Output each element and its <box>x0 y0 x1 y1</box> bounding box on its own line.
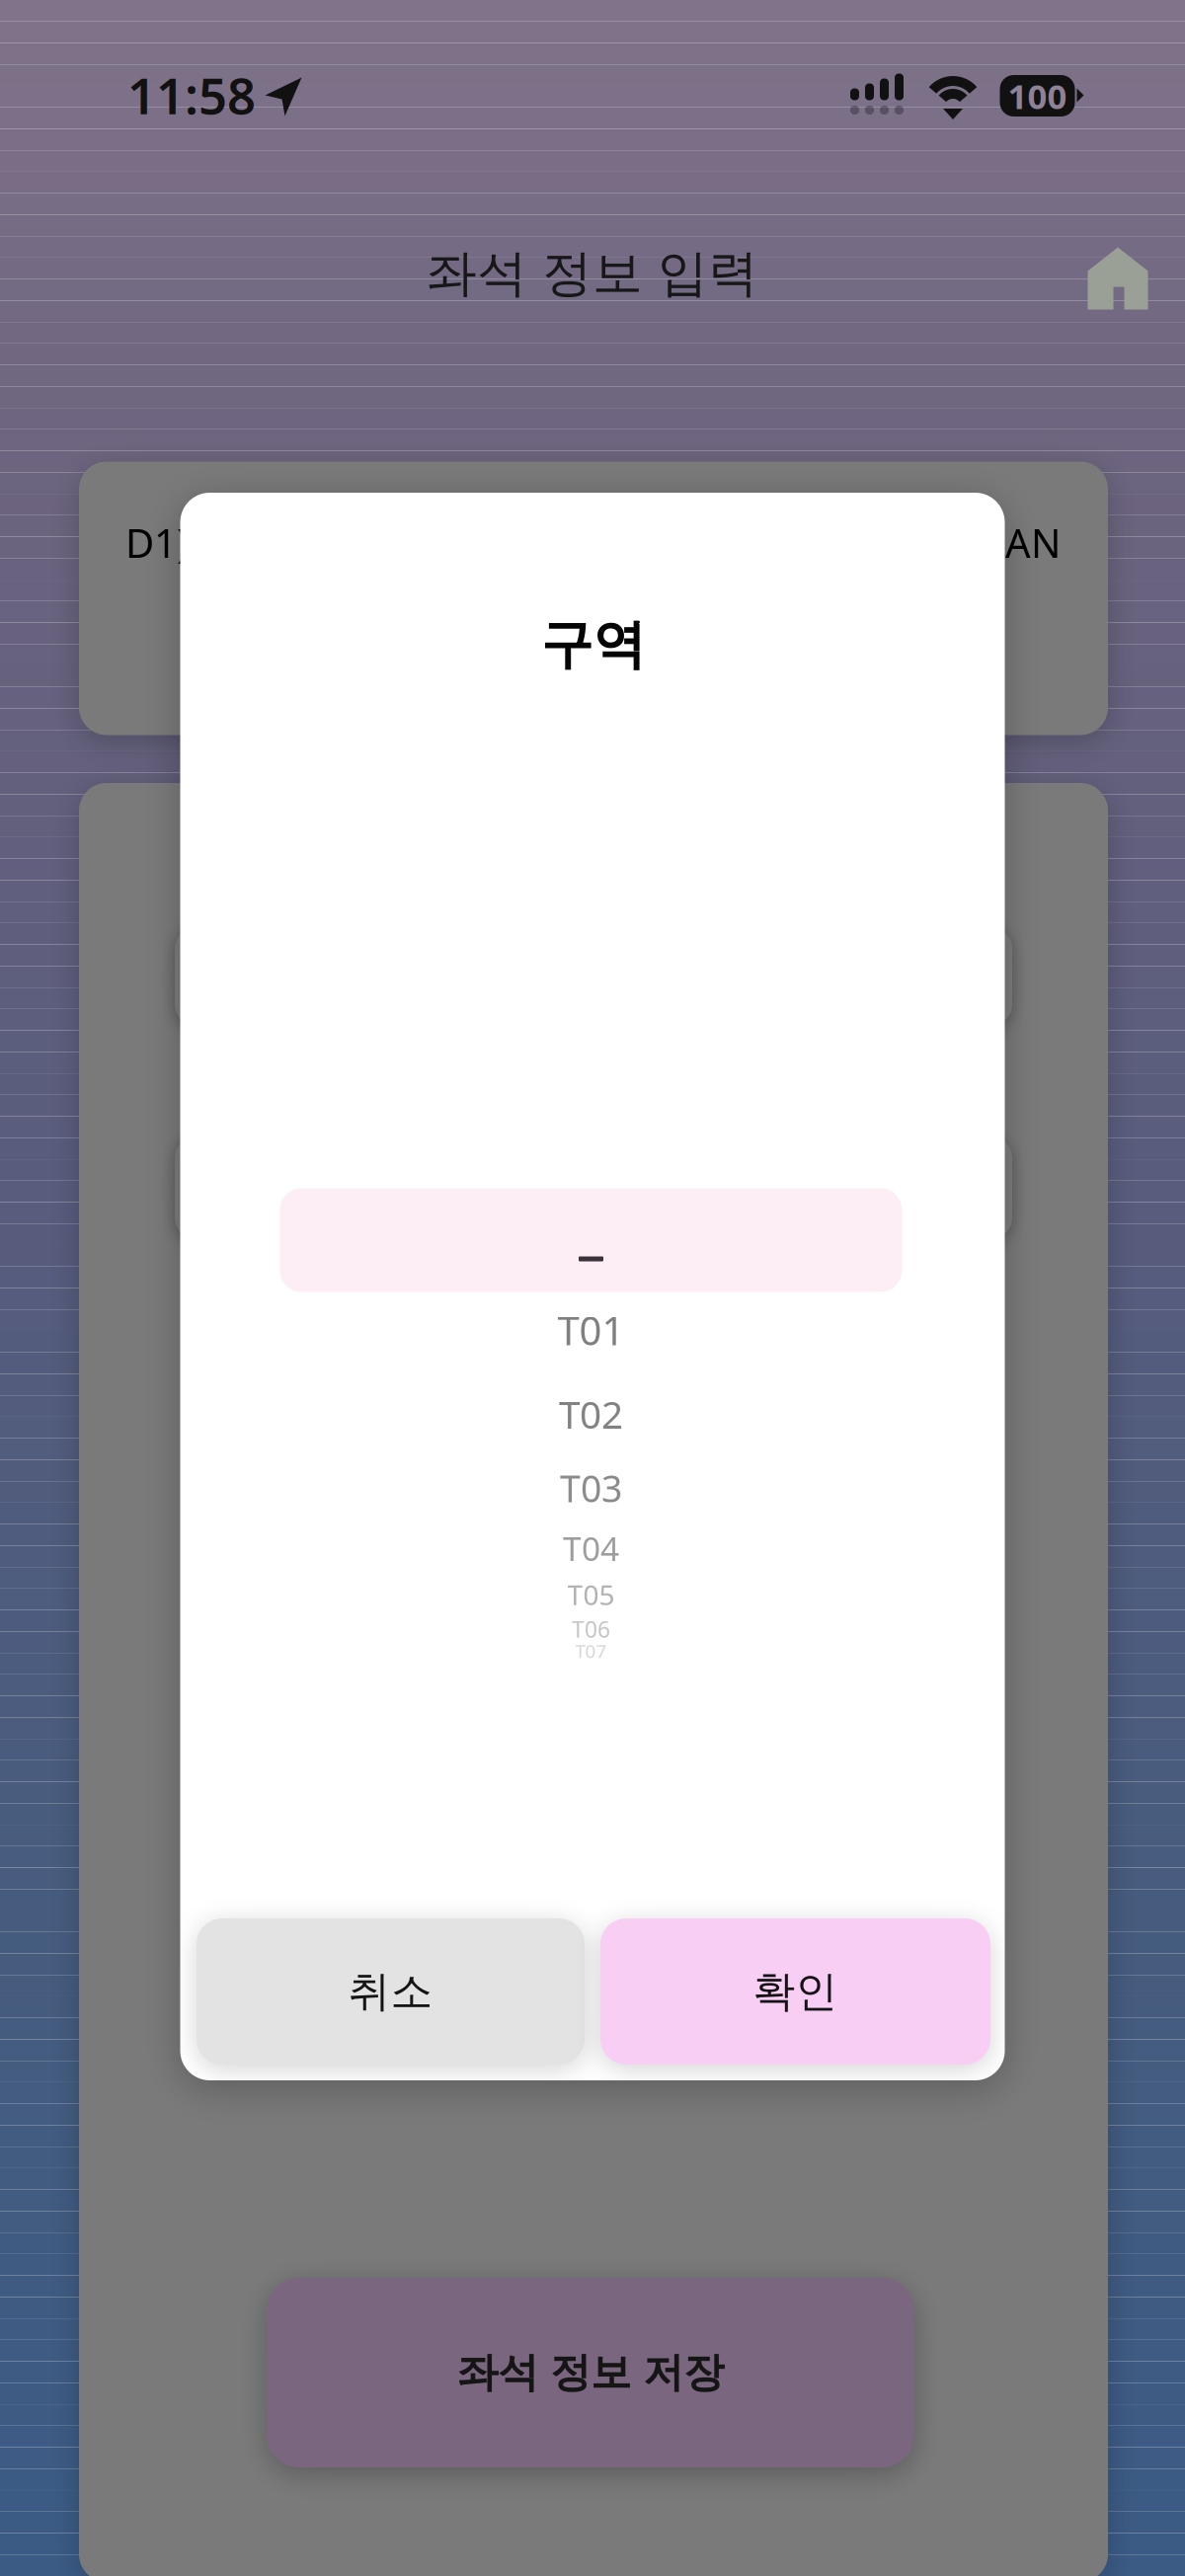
button[interactable]: 확인 <box>600 1918 990 2065</box>
staticText: AN <box>1005 516 1061 569</box>
staticText: T07 <box>575 1639 607 1663</box>
staticText: T04 <box>563 1526 619 1570</box>
staticText: T03 <box>560 1463 622 1512</box>
staticText: T05 <box>567 1576 615 1613</box>
staticText: 좌석 정보 입력 <box>427 243 758 304</box>
staticText: 구역 <box>541 612 645 677</box>
staticText: D1) <box>125 516 189 569</box>
staticText: T01 <box>557 1304 625 1356</box>
staticText: 100 <box>1008 73 1067 118</box>
button[interactable]: 취소 <box>197 1918 585 2065</box>
staticText: 좌석 정보 저장 <box>457 2348 724 2398</box>
staticText: 취소 <box>348 1966 433 2017</box>
staticText: T06 <box>572 1614 610 1644</box>
button[interactable]: Home <box>1088 247 1148 310</box>
staticText: T02 <box>559 1389 623 1439</box>
staticText: 11:58 <box>127 62 256 128</box>
staticText: 확인 <box>753 1966 838 2017</box>
button[interactable]: 좌석 정보 저장 <box>267 2278 914 2467</box>
